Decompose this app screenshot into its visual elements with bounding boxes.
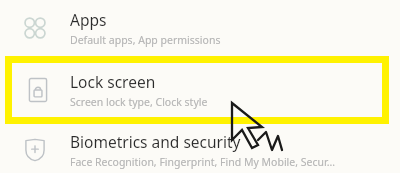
staticText: Apps xyxy=(70,9,107,30)
staticText: Default apps, App permissions xyxy=(70,33,221,47)
button[interactable]: Biometrics and security xyxy=(0,126,400,173)
other: Lock screen xyxy=(25,77,51,103)
button[interactable]: Lock screen xyxy=(5,56,389,124)
staticText: Lock screen xyxy=(70,71,156,92)
staticText: Biometrics and security xyxy=(70,131,241,152)
other: Biometrics and security xyxy=(22,137,48,163)
button[interactable]: Apps xyxy=(0,0,400,56)
staticText: Face Recognition, Fingerprint, Find My M… xyxy=(70,155,336,169)
staticText: Screen lock type, Clock style xyxy=(70,95,208,109)
other: Apps xyxy=(23,16,47,40)
